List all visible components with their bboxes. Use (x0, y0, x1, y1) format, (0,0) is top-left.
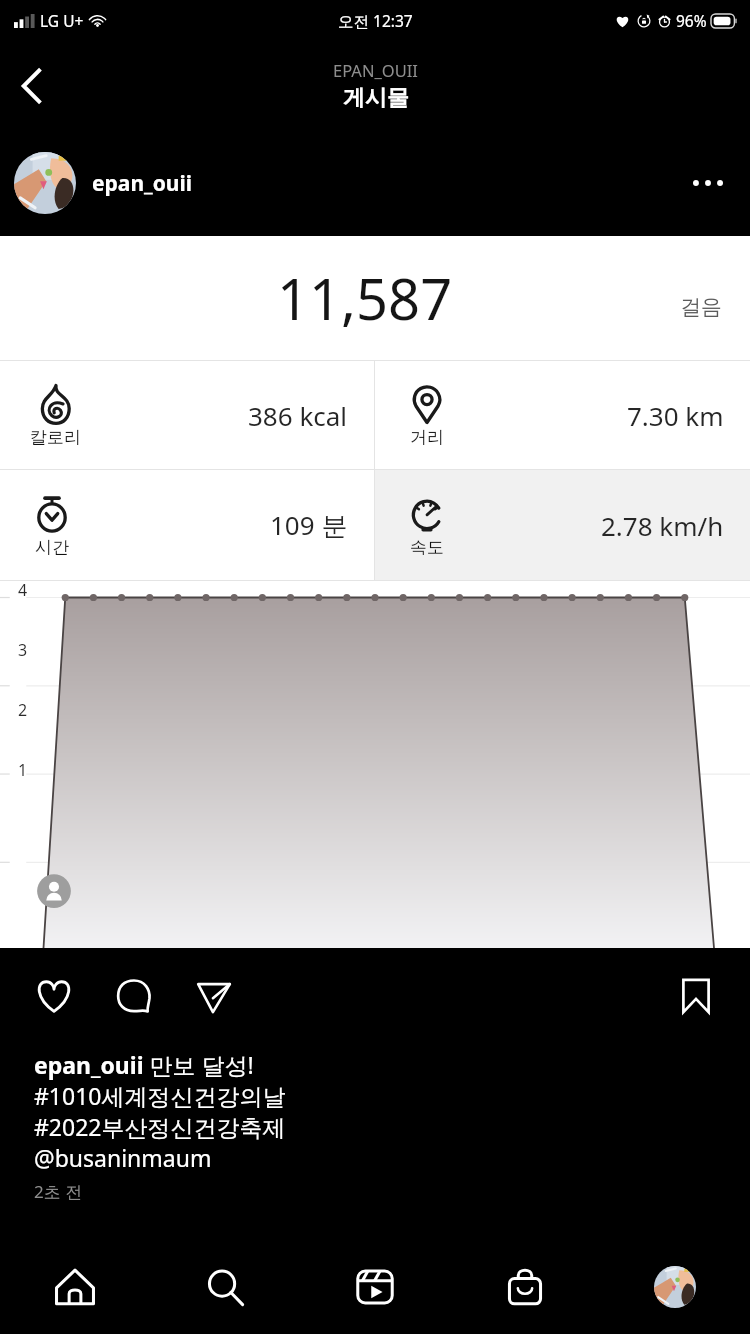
staticText: 11,587 (277, 260, 453, 336)
button[interactable]: 거리 (375, 361, 750, 469)
staticText: 2초 전 (34, 1180, 83, 1203)
button[interactable]: Save (667, 967, 725, 1025)
button[interactable]: More options (680, 155, 736, 211)
button[interactable]: epan_ouii 만보 달성! (0, 1043, 750, 1203)
staticText: @busaninmaum (34, 1142, 212, 1173)
staticText: 109 분 (270, 507, 348, 543)
staticText: 96% (676, 10, 707, 31)
staticText: 2 (18, 699, 28, 721)
button[interactable]: Shop (450, 1240, 600, 1334)
button[interactable]: Reels (300, 1240, 450, 1334)
staticText: 4 (18, 579, 28, 601)
staticText: 7.30 km (627, 398, 724, 433)
button[interactable]: epan_ouii (0, 130, 750, 236)
button[interactable]: 속도 (375, 470, 750, 580)
staticText: epan_ouii (92, 169, 193, 198)
staticText: EPAN_OUII (333, 59, 418, 81)
staticText: 칼로리 (30, 427, 81, 448)
button[interactable]: Like (25, 967, 83, 1025)
staticText: 1 (18, 759, 28, 781)
staticText: 속도 (410, 537, 444, 558)
staticText: 3 (18, 639, 28, 661)
button[interactable]: Profile (600, 1240, 750, 1334)
staticText: #2022부산정신건강축제 (34, 1111, 286, 1142)
staticText: LG U+ (40, 10, 84, 31)
staticText: 2.78 km/h (601, 508, 724, 543)
button[interactable]: Home (0, 1240, 150, 1334)
button[interactable]: Search (150, 1240, 300, 1334)
button[interactable]: Comment (105, 967, 163, 1025)
staticText: 오전 12:37 (338, 10, 413, 31)
button[interactable]: 시간 (0, 470, 374, 580)
button[interactable]: Back (0, 54, 64, 118)
staticText: epan_ouii 만보 달성! (34, 1049, 254, 1080)
staticText: 시간 (35, 537, 69, 558)
button[interactable]: 칼로리 (0, 361, 374, 469)
staticText: 걸음 (680, 294, 722, 320)
staticText: 거리 (410, 427, 444, 448)
button[interactable]: Share (185, 967, 243, 1025)
staticText: 게시물 (343, 84, 409, 112)
staticText: #1010세계정신건강의날 (34, 1080, 286, 1111)
staticText: 386 kcal (248, 398, 348, 433)
